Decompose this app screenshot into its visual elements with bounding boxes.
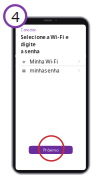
staticText: Cancelar — [21, 27, 37, 32]
staticText: minhasenha — [29, 67, 59, 74]
staticText: 4 — [11, 6, 19, 26]
staticText: Próximo — [43, 147, 58, 152]
staticText: Selecione a Wi-Fi e digite a senha — [21, 33, 69, 55]
button[interactable]: Próximo — [29, 146, 73, 154]
staticText: Minha Wi-Fi — [29, 58, 57, 65]
button[interactable]: minhasenha — [16, 66, 86, 75]
button[interactable]: Minha Wi-Fi — [16, 57, 86, 66]
button[interactable]: Cancelar — [16, 25, 40, 33]
